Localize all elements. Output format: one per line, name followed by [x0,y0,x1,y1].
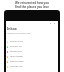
button[interactable]: Weekly recap [6,59,58,64]
button[interactable]: Team review [6,54,58,59]
staticText: Grocery list [10,45,22,48]
button[interactable]: More options [53,22,56,25]
staticText: Morning run [10,40,24,43]
button[interactable]: Morning run [6,39,58,44]
button[interactable]: Grocery list [6,44,58,49]
button[interactable]: Plan the trip [6,64,58,69]
staticText: Weekly recap [10,60,24,63]
staticText: find the places you love [15,5,49,9]
staticText: Design sync [10,50,23,53]
button[interactable]: Search [49,22,52,25]
staticText: Inbox [7,26,17,31]
staticText: Plan the trip [10,65,23,68]
staticText: Team review [10,55,23,58]
button[interactable]: Design sync [6,49,58,54]
staticText: We reinvented how you [15,1,49,5]
staticText: Updated a moment ago [7,32,31,35]
